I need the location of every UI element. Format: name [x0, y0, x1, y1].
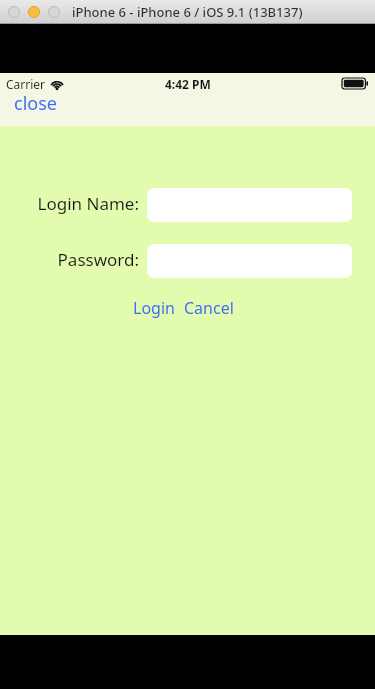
button[interactable]: close	[12, 91, 59, 116]
staticText: Cancel	[184, 297, 234, 319]
staticText: 4:42 PM	[165, 76, 211, 92]
button[interactable]: Login Name:	[147, 188, 352, 222]
button[interactable]: Minimize window	[28, 6, 40, 18]
staticText: iPhone 6 - iPhone 6 / iOS 9.1 (13B137)	[72, 3, 303, 21]
staticText: Password:	[0, 248, 139, 271]
staticText: Login Name:	[0, 192, 139, 215]
button[interactable]: Close window	[8, 6, 20, 18]
button[interactable]: Login	[131, 296, 177, 320]
staticText: Carrier	[6, 76, 46, 92]
staticText: close	[14, 91, 57, 116]
button[interactable]: Zoom window	[48, 6, 60, 18]
button[interactable]: Cancel	[182, 296, 236, 320]
button[interactable]: Password:	[147, 244, 352, 278]
staticText: Login	[133, 297, 175, 319]
